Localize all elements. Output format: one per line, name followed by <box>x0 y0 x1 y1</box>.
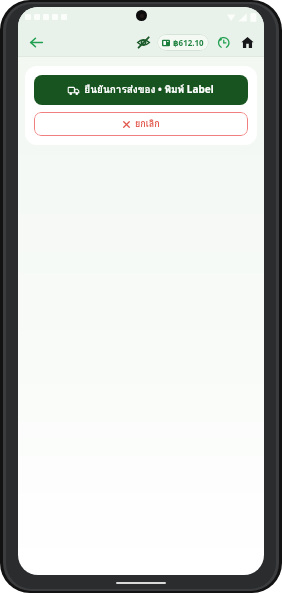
staticText: ยืนยันการส่งของ • พิมพ์ Label <box>84 82 214 98</box>
button[interactable]: Back <box>23 29 49 55</box>
button[interactable]: History <box>211 30 235 54</box>
button[interactable]: Hide amount <box>131 30 155 54</box>
staticText: ยกเลิก <box>135 117 160 131</box>
button[interactable]: ยืนยันการส่งของ • พิมพ์ Label <box>34 75 248 105</box>
staticText: ฿612.10 <box>173 37 204 48</box>
button[interactable]: Home <box>235 30 259 54</box>
button[interactable]: ยกเลิก <box>34 112 248 136</box>
button[interactable]: ฿612.10 <box>157 34 209 51</box>
